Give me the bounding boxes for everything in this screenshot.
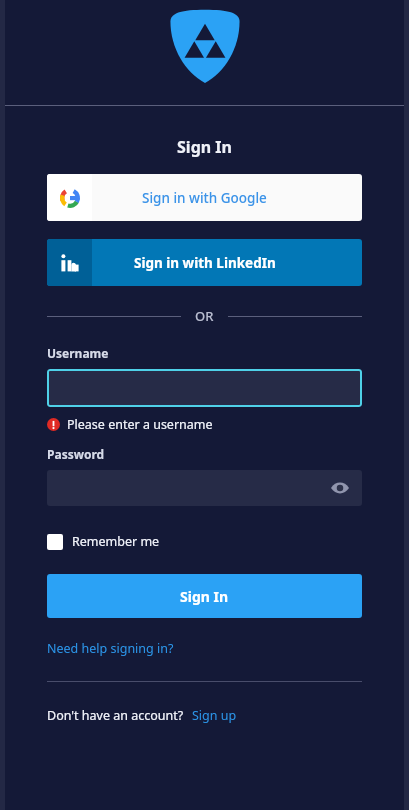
staticText: Remember me bbox=[72, 533, 160, 550]
staticText: Need help signing in? bbox=[47, 640, 174, 657]
staticText: Don't have an account? bbox=[47, 707, 184, 724]
staticText: Username bbox=[47, 345, 109, 361]
button[interactable]: Sign up bbox=[192, 707, 237, 724]
staticText: Sign in with Google bbox=[142, 189, 267, 207]
button[interactable]: Sign in with Google bbox=[47, 174, 362, 221]
button[interactable]: Sign In bbox=[47, 574, 362, 618]
staticText: Sign In bbox=[180, 587, 229, 606]
staticText: Please enter a username bbox=[67, 416, 213, 433]
button[interactable]: Show password bbox=[47, 470, 362, 506]
staticText: Password bbox=[47, 446, 105, 462]
button[interactable]: Need help signing in? bbox=[47, 640, 174, 657]
staticText: Sign up bbox=[192, 707, 237, 724]
button[interactable]: Sign in with LinkedIn bbox=[47, 239, 362, 286]
staticText: Sign in with LinkedIn bbox=[134, 254, 276, 272]
button[interactable]: Show password bbox=[330, 478, 350, 498]
button[interactable]: Remember me bbox=[47, 533, 160, 550]
staticText: OR bbox=[195, 307, 214, 325]
staticText: Sign In bbox=[47, 136, 362, 158]
button[interactable] bbox=[47, 369, 362, 407]
